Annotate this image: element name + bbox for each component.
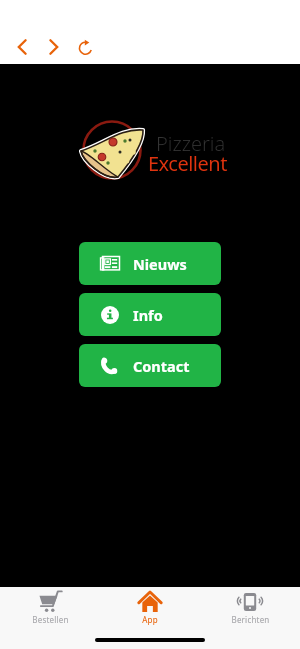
staticText: Bestellen — [32, 614, 69, 625]
button[interactable]: Info — [79, 293, 221, 336]
staticText: Excellent — [148, 150, 227, 177]
button[interactable]: App — [100, 587, 200, 625]
staticText: App — [142, 614, 158, 625]
button[interactable]: Reload — [70, 31, 102, 63]
button[interactable]: Nieuws — [79, 242, 221, 285]
button[interactable]: Contact — [79, 344, 221, 387]
staticText: Pizzeria — [156, 130, 226, 157]
staticText: Contact — [133, 356, 190, 376]
staticText: Info — [133, 305, 163, 325]
staticText: Berichten — [231, 614, 270, 625]
button[interactable]: Bestellen — [0, 587, 100, 625]
button[interactable]: Back — [6, 31, 38, 63]
button[interactable]: Forward — [38, 31, 70, 63]
button[interactable]: Berichten — [200, 587, 300, 625]
staticText: Nieuws — [133, 254, 187, 274]
